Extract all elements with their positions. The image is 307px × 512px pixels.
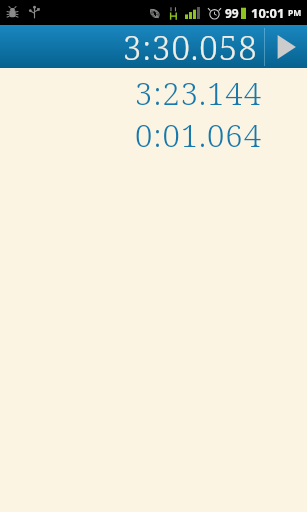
button[interactable]: 0:01.064 (0, 114, 307, 156)
staticText: 3:23.144 (135, 72, 262, 114)
staticText: 99 (225, 5, 239, 21)
button[interactable]: Start (265, 25, 307, 68)
staticText: 10:01 (251, 4, 285, 22)
staticText: 3:30.058 (123, 25, 258, 68)
staticText: PM (288, 7, 302, 19)
staticText: 0:01.064 (135, 114, 262, 156)
button[interactable]: 3:23.144 (0, 72, 307, 114)
button[interactable]: 3:30.058 (0, 25, 264, 68)
